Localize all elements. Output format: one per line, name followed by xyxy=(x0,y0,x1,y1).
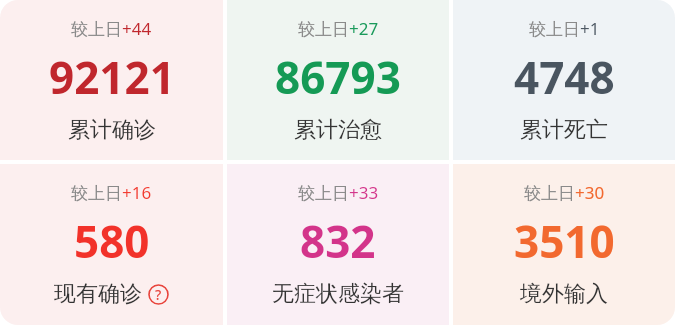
staticText: 较上日+27 xyxy=(298,17,379,40)
button[interactable]: 较上日+1 xyxy=(453,0,675,160)
button[interactable]: 帮助说明 xyxy=(148,284,169,305)
staticText: 累计治愈 xyxy=(294,116,382,144)
staticText: 境外输入 xyxy=(520,280,608,308)
staticText: 累计死亡 xyxy=(520,116,608,144)
staticText: ? xyxy=(155,285,162,304)
staticText: 现有确诊 xyxy=(54,280,142,308)
staticText: 4748 xyxy=(514,47,615,107)
button[interactable]: 较上日+44 xyxy=(0,0,223,160)
staticText: 3510 xyxy=(514,211,615,271)
staticText: 580 xyxy=(74,211,150,271)
staticText: 较上日+16 xyxy=(71,181,152,204)
button[interactable]: 较上日+27 xyxy=(227,0,449,160)
staticText: 较上日+1 xyxy=(529,17,600,40)
staticText: 92121 xyxy=(49,47,175,107)
staticText: 较上日+30 xyxy=(524,181,605,204)
button[interactable]: 较上日+30 xyxy=(453,164,675,325)
staticText: 无症状感染者 xyxy=(272,280,404,308)
staticText: 832 xyxy=(300,211,376,271)
button[interactable]: 较上日+16 xyxy=(0,164,223,325)
staticText: 较上日+44 xyxy=(71,17,152,40)
staticText: 累计确诊 xyxy=(68,116,156,144)
button[interactable]: 较上日+33 xyxy=(227,164,449,325)
staticText: 较上日+33 xyxy=(298,181,379,204)
staticText: 86793 xyxy=(275,47,401,107)
